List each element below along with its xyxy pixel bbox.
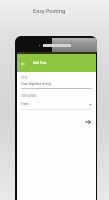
button[interactable]: Trade bbox=[21, 102, 92, 106]
staticText: Smart Nighttime Shining bbox=[21, 82, 52, 86]
staticText: CATEGORIES bbox=[21, 94, 37, 98]
button[interactable]: Back bbox=[17, 54, 96, 72]
button[interactable]: Next bbox=[84, 118, 92, 126]
staticText: TITLE bbox=[21, 76, 28, 80]
button[interactable]: Back bbox=[18, 59, 27, 68]
staticText: Add Post bbox=[33, 61, 47, 65]
staticText: Trade bbox=[21, 102, 29, 106]
staticText: Easy Posting bbox=[33, 7, 66, 14]
